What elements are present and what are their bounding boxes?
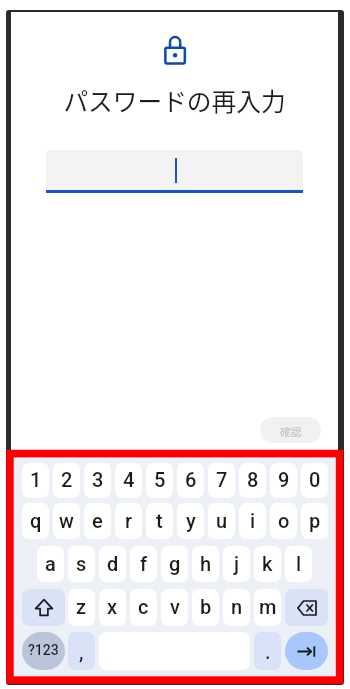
staticText: l — [296, 552, 302, 575]
staticText: w — [59, 509, 74, 532]
button[interactable]: 2 — [53, 463, 80, 498]
button[interactable]: o — [270, 503, 297, 539]
button[interactable]: Backspace — [285, 589, 328, 626]
staticText: f — [140, 552, 148, 575]
staticText: 6 — [185, 468, 197, 491]
staticText: r — [125, 509, 133, 532]
button[interactable]: f — [130, 546, 157, 582]
button[interactable]: 0 — [301, 463, 328, 498]
button[interactable]: k — [254, 546, 281, 582]
button[interactable] — [46, 150, 303, 191]
staticText: . — [265, 640, 271, 663]
button[interactable]: c — [130, 589, 157, 626]
staticText: a — [45, 552, 56, 575]
staticText: h — [200, 552, 212, 575]
staticText: 1 — [30, 468, 42, 491]
button[interactable]: r — [115, 503, 142, 539]
staticText: 4 — [123, 468, 135, 491]
staticText: k — [262, 552, 273, 575]
staticText: n — [231, 595, 243, 618]
button[interactable]: 3 — [84, 463, 111, 498]
button[interactable]: d — [99, 546, 126, 582]
button[interactable]: b — [192, 589, 219, 626]
staticText: パスワードの再入力 — [63, 82, 286, 114]
staticText: e — [92, 509, 103, 532]
button[interactable]: s — [68, 546, 95, 582]
button[interactable]: 4 — [115, 463, 142, 498]
staticText: 2 — [61, 468, 73, 491]
staticText: o — [278, 509, 290, 532]
button[interactable]: 1 — [22, 463, 49, 498]
staticText: s — [76, 552, 87, 575]
staticText: 3 — [92, 468, 104, 491]
button[interactable]: h — [192, 546, 219, 582]
button[interactable]: 確認 — [260, 417, 321, 443]
staticText: 5 — [154, 468, 166, 491]
staticText: c — [138, 595, 149, 618]
button[interactable]: a — [37, 546, 64, 582]
button[interactable]: Enter — [285, 632, 328, 670]
button[interactable]: ?123 — [22, 632, 65, 670]
staticText: z — [76, 595, 87, 618]
staticText: q — [30, 509, 42, 532]
button[interactable]: p — [301, 503, 328, 539]
staticText: v — [170, 595, 180, 618]
staticText: i — [250, 509, 256, 532]
button[interactable]: , — [68, 632, 95, 670]
staticText: 7 — [216, 468, 228, 491]
button[interactable]: q — [22, 503, 49, 539]
button[interactable]: w — [53, 503, 80, 539]
button[interactable]: . — [254, 632, 281, 670]
staticText: g — [169, 552, 181, 575]
staticText: 0 — [309, 468, 321, 491]
button[interactable]: z — [68, 589, 95, 626]
button[interactable]: 5 — [146, 463, 173, 498]
button[interactable]: y — [177, 503, 204, 539]
staticText: d — [107, 552, 119, 575]
staticText: t — [156, 509, 163, 532]
staticText: y — [186, 509, 196, 532]
button[interactable]: e — [84, 503, 111, 539]
button[interactable]: g — [161, 546, 188, 582]
staticText: 9 — [278, 468, 290, 491]
staticText: p — [309, 509, 321, 532]
staticText: j — [234, 552, 240, 575]
button[interactable]: u — [208, 503, 235, 539]
button[interactable]: t — [146, 503, 173, 539]
button[interactable]: 8 — [239, 463, 266, 498]
button[interactable]: 6 — [177, 463, 204, 498]
button[interactable]: m — [254, 589, 281, 626]
staticText: 8 — [247, 468, 259, 491]
staticText: b — [200, 595, 212, 618]
button[interactable]: j — [223, 546, 250, 582]
staticText: m — [259, 595, 277, 618]
button[interactable]: l — [285, 546, 312, 582]
button[interactable]: i — [239, 503, 266, 539]
button[interactable]: Shift — [22, 589, 65, 626]
staticText: 確認 — [280, 424, 302, 439]
staticText: ?123 — [28, 642, 59, 658]
button[interactable]: v — [161, 589, 188, 626]
staticText: u — [216, 509, 228, 532]
staticText: , — [79, 640, 84, 663]
button[interactable]: n — [223, 589, 250, 626]
button[interactable]: 9 — [270, 463, 297, 498]
staticText: x — [107, 595, 118, 618]
button[interactable]: x — [99, 589, 126, 626]
button[interactable]: 7 — [208, 463, 235, 498]
